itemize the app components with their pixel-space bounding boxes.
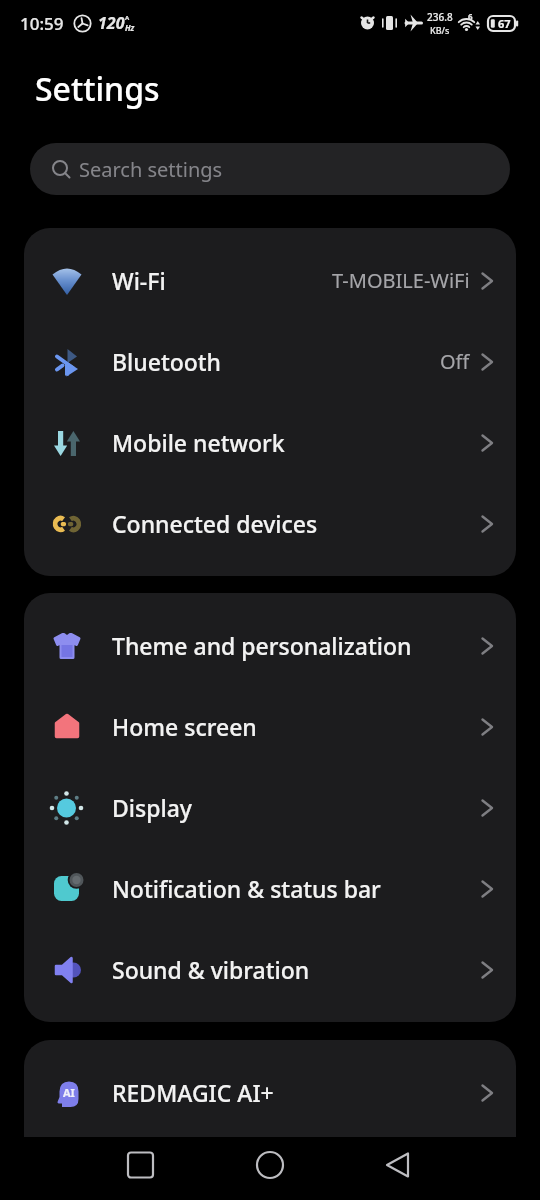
staticText: 120	[98, 12, 125, 34]
staticText: Hz	[125, 22, 135, 33]
staticText: KB/s	[430, 24, 450, 36]
staticText: REDMAGIC AI+	[112, 1077, 274, 1108]
button[interactable]	[0, 1137, 180, 1200]
button[interactable]: Bluetooth	[24, 321, 516, 402]
button[interactable]: Mobile network	[24, 402, 516, 483]
button[interactable]: Search settings	[30, 143, 510, 195]
button[interactable]: Theme and personalization	[24, 605, 516, 686]
staticText: A	[125, 14, 130, 22]
staticText: T-MOBILE-WiFi	[332, 267, 470, 294]
button[interactable]: AI	[24, 1052, 516, 1133]
button[interactable]: Home screen	[24, 686, 516, 767]
staticText: Home screen	[112, 711, 257, 742]
staticText: Search settings	[79, 156, 223, 183]
staticText: AI	[63, 1085, 75, 1100]
staticText: Display	[112, 792, 192, 823]
staticText: 236.8	[427, 10, 453, 24]
button[interactable]: Display	[24, 767, 516, 848]
staticText: 10:59	[20, 12, 64, 35]
button[interactable]: Wi-Fi	[24, 240, 516, 321]
staticText: 6	[468, 11, 473, 22]
staticText: Notification & status bar	[112, 873, 381, 904]
button[interactable]	[180, 1137, 360, 1200]
staticText: 67	[498, 16, 511, 31]
staticText: Wi-Fi	[112, 265, 166, 296]
staticText: Bluetooth	[112, 346, 222, 377]
staticText: Mobile network	[112, 427, 285, 458]
button[interactable]: Notification & status bar	[24, 848, 516, 929]
button[interactable]: Connected devices	[24, 483, 516, 564]
staticText: Theme and personalization	[112, 630, 412, 661]
staticText: Sound & vibration	[112, 954, 310, 985]
staticText: Connected devices	[112, 508, 318, 539]
button[interactable]: Sound & vibration	[24, 929, 516, 1010]
staticText: Off	[440, 348, 470, 375]
staticText: Settings	[35, 67, 160, 111]
button[interactable]	[360, 1137, 540, 1200]
